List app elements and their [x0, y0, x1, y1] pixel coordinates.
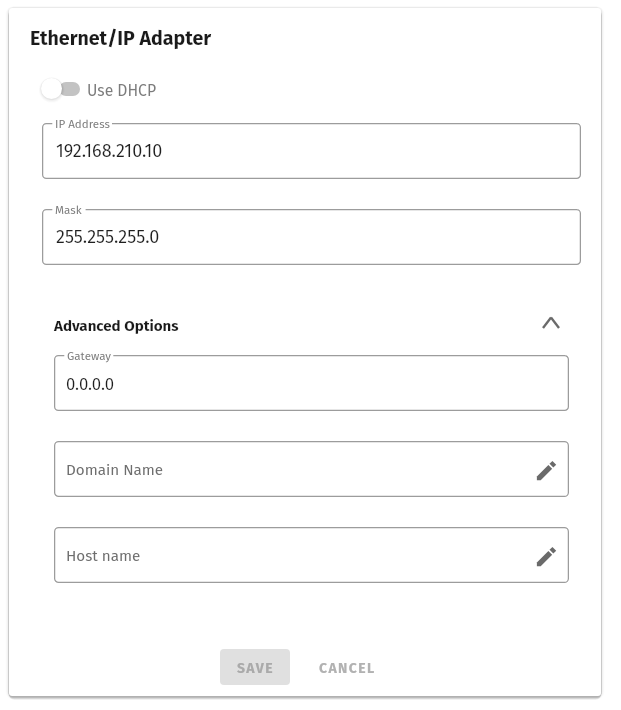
staticText: 192.168.210.10	[56, 140, 163, 162]
staticText: Use DHCP	[87, 81, 157, 100]
staticText: Domain Name	[66, 461, 164, 479]
staticText: 0.0.0.0	[66, 374, 115, 394]
staticText: CANCEL	[319, 660, 376, 677]
button[interactable]: Edit Domain Name	[534, 458, 557, 481]
staticText: 255.255.255.0	[56, 226, 160, 248]
other: Collapse Advanced Options	[533, 308, 567, 342]
staticText: Ethernet/IP Adapter	[30, 27, 212, 51]
staticText: SAVE	[237, 660, 274, 677]
staticText: Gateway	[67, 349, 111, 363]
button[interactable]: Advanced Options	[47, 308, 575, 342]
staticText: Advanced Options	[54, 317, 179, 335]
staticText: IP Address	[55, 117, 110, 131]
button[interactable]: Use DHCP	[38, 74, 164, 104]
staticText: Mask	[55, 203, 82, 217]
staticText: Host name	[66, 547, 141, 565]
button[interactable]: Edit Host name	[534, 544, 557, 567]
button[interactable]: CANCEL	[303, 649, 391, 685]
button[interactable]: SAVE	[220, 649, 290, 685]
